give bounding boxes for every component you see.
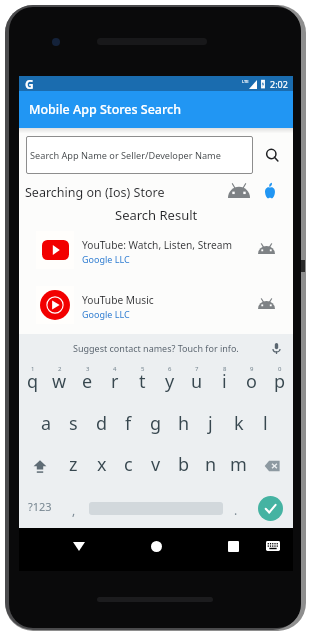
staticText: ?123 bbox=[28, 499, 52, 514]
staticText: YouTube Music bbox=[82, 293, 154, 307]
staticText: x bbox=[97, 452, 107, 477]
staticText: v bbox=[151, 452, 161, 477]
button[interactable]: b bbox=[170, 445, 197, 487]
staticText: LTE bbox=[242, 79, 249, 84]
button[interactable]: YouTube: Watch, Listen, Stream bbox=[19, 226, 293, 280]
button[interactable]: Shift bbox=[19, 445, 60, 487]
button[interactable]: n bbox=[197, 445, 224, 487]
button[interactable]: m bbox=[225, 445, 252, 487]
staticText: Suggest contact names? Touch for info. bbox=[73, 342, 239, 354]
button[interactable]: d bbox=[88, 404, 115, 446]
staticText: o bbox=[246, 369, 257, 394]
button[interactable]: Backspace bbox=[252, 445, 293, 487]
staticText: l bbox=[263, 411, 268, 436]
staticText: 9 bbox=[250, 365, 254, 373]
button[interactable]: h bbox=[170, 404, 197, 446]
button[interactable]: a bbox=[33, 404, 60, 446]
button[interactable] bbox=[87, 487, 225, 529]
button[interactable]: 5 bbox=[129, 362, 156, 404]
button[interactable]: Home bbox=[144, 534, 168, 558]
staticText: s bbox=[69, 411, 78, 436]
button[interactable]: Search App Name or Seller/Developer Name bbox=[26, 136, 253, 174]
staticText: g bbox=[150, 411, 162, 436]
staticText: f bbox=[125, 411, 132, 436]
staticText: 2 bbox=[58, 365, 62, 373]
staticText: c bbox=[124, 452, 133, 477]
button[interactable]: 4 bbox=[101, 362, 128, 404]
staticText: r bbox=[111, 369, 119, 394]
staticText: z bbox=[69, 452, 78, 477]
staticText: Mobile App Stores Search bbox=[29, 101, 182, 118]
button[interactable]: Back bbox=[67, 534, 91, 558]
staticText: t bbox=[139, 369, 146, 394]
button[interactable]: f bbox=[115, 404, 142, 446]
button[interactable]: j bbox=[197, 404, 224, 446]
staticText: Google LLC bbox=[82, 308, 130, 320]
other: Android app bbox=[258, 299, 275, 310]
button[interactable]: 9 bbox=[238, 362, 265, 404]
staticText: . bbox=[234, 502, 238, 518]
other: Android app bbox=[258, 244, 275, 255]
staticText: q bbox=[27, 369, 39, 394]
button[interactable]: 1 bbox=[19, 362, 46, 404]
staticText: 8 bbox=[223, 365, 227, 373]
staticText: m bbox=[230, 452, 247, 477]
staticText: y bbox=[165, 369, 175, 394]
staticText: 6 bbox=[168, 365, 172, 373]
staticText: b bbox=[178, 452, 190, 477]
button[interactable]: 2 bbox=[46, 362, 73, 404]
button[interactable]: Switch keyboard bbox=[261, 534, 285, 558]
button[interactable]: v bbox=[142, 445, 169, 487]
button[interactable]: Suggest contact names? Touch for info. bbox=[19, 334, 293, 362]
staticText: Search App Name or Seller/Developer Name bbox=[30, 149, 221, 162]
button[interactable]: l bbox=[252, 404, 279, 446]
staticText: G bbox=[25, 76, 34, 91]
staticText: Google LLC bbox=[82, 253, 130, 265]
staticText: 5 bbox=[141, 365, 145, 373]
staticText: 7 bbox=[195, 365, 199, 373]
button[interactable]: Voice input bbox=[270, 342, 283, 355]
button[interactable]: Search bbox=[255, 136, 289, 174]
button[interactable]: 0 bbox=[266, 362, 293, 404]
button[interactable]: iOS store bbox=[263, 182, 277, 199]
staticText: d bbox=[96, 411, 108, 436]
staticText: YouTube: Watch, Listen, Stream bbox=[82, 238, 232, 252]
staticText: i bbox=[222, 369, 227, 394]
staticText: 0 bbox=[278, 365, 282, 373]
button[interactable]: k bbox=[225, 404, 252, 446]
staticText: Search Result bbox=[115, 206, 198, 224]
staticText: e bbox=[82, 369, 93, 394]
button[interactable]: YouTube Music bbox=[19, 281, 293, 335]
staticText: 2:02 bbox=[270, 78, 288, 90]
staticText: 3 bbox=[86, 365, 90, 373]
staticText: a bbox=[41, 411, 52, 436]
button[interactable]: ?123 bbox=[19, 487, 60, 529]
button[interactable]: s bbox=[60, 404, 87, 446]
staticText: p bbox=[274, 369, 286, 394]
button[interactable]: 3 bbox=[74, 362, 101, 404]
button[interactable]: z bbox=[60, 445, 87, 487]
button[interactable]: , bbox=[60, 487, 87, 529]
staticText: w bbox=[52, 369, 67, 394]
staticText: j bbox=[208, 411, 213, 436]
button[interactable]: Android store bbox=[228, 184, 250, 198]
staticText: 4 bbox=[113, 365, 117, 373]
button[interactable]: Recents bbox=[221, 534, 245, 558]
button[interactable]: . bbox=[225, 487, 247, 529]
button[interactable]: Mobile App Stores Search bbox=[19, 91, 293, 128]
button[interactable]: 7 bbox=[183, 362, 210, 404]
button[interactable]: x bbox=[88, 445, 115, 487]
button[interactable]: Enter bbox=[247, 487, 293, 529]
button[interactable]: g bbox=[142, 404, 169, 446]
staticText: , bbox=[72, 502, 76, 518]
button[interactable]: 8 bbox=[211, 362, 238, 404]
staticText: 1 bbox=[31, 365, 35, 373]
staticText: u bbox=[191, 369, 203, 394]
staticText: k bbox=[234, 411, 244, 436]
staticText: Searching on (Ios) Store bbox=[25, 184, 165, 201]
staticText: h bbox=[178, 411, 190, 436]
button[interactable]: 6 bbox=[156, 362, 183, 404]
staticText: n bbox=[205, 452, 217, 477]
button[interactable]: c bbox=[115, 445, 142, 487]
